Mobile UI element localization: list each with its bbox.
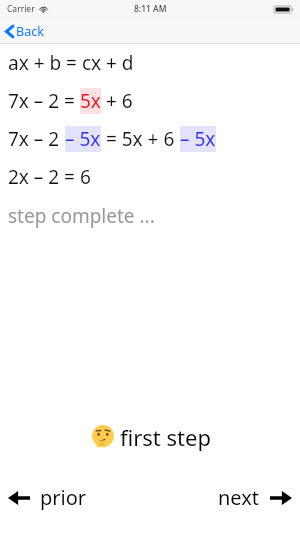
staticText: 7x – 2 <box>8 126 65 152</box>
staticText: prior <box>40 484 87 511</box>
staticText: – 5x <box>65 126 101 152</box>
button[interactable]: next <box>208 479 300 516</box>
staticText: = 5x + 6 <box>101 126 180 152</box>
staticText: first step <box>120 422 211 452</box>
staticText: + 6 <box>101 88 133 114</box>
button[interactable]: first step <box>0 418 300 456</box>
staticText: Carrier <box>7 3 35 15</box>
button[interactable]: Back <box>0 20 52 43</box>
staticText: 5x <box>80 88 101 114</box>
button[interactable]: Previous step <box>0 479 97 516</box>
staticText: ax + b = cx + d <box>8 50 134 76</box>
staticText: step complete ... <box>8 203 155 229</box>
other: Previous step <box>8 490 30 506</box>
staticText: – 5x <box>180 126 216 152</box>
staticText: Back <box>16 23 44 40</box>
other: Next step <box>270 490 292 506</box>
staticText: 8:11 AM <box>134 3 167 15</box>
staticText: next <box>218 484 260 511</box>
staticText: 2x – 2 = 6 <box>8 164 91 190</box>
staticText: 7x – 2 = <box>8 88 80 114</box>
